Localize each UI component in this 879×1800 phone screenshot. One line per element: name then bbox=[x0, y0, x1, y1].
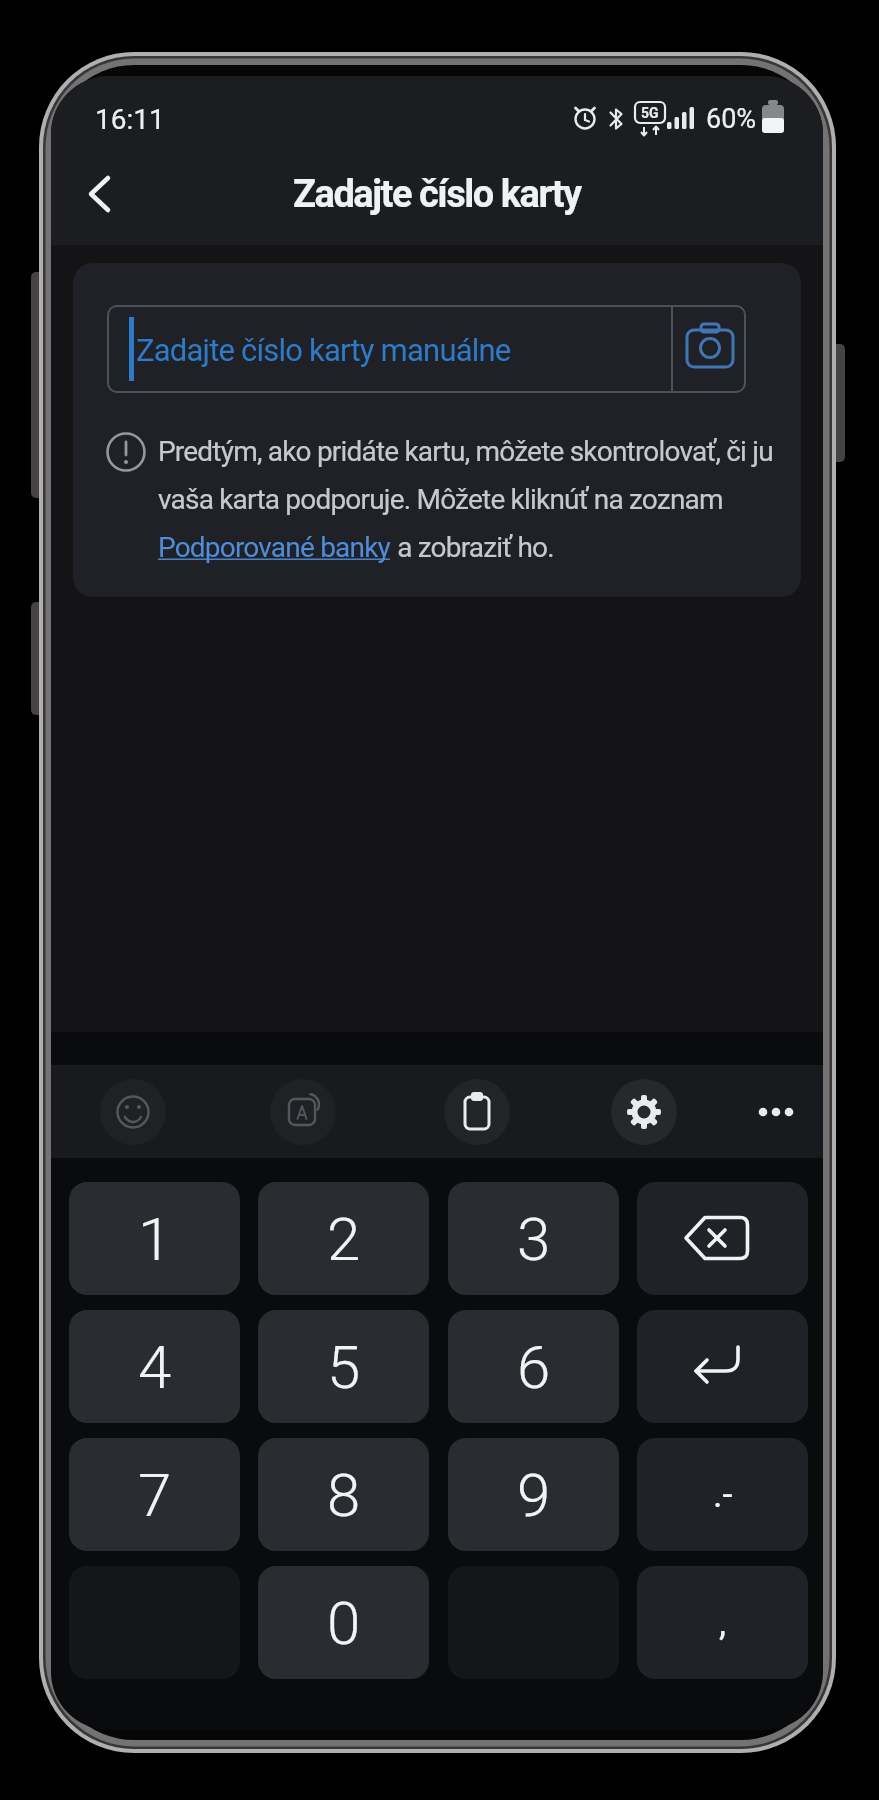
staticText: Zadajte číslo karty bbox=[293, 172, 581, 217]
button[interactable]: 7 bbox=[69, 1438, 240, 1551]
staticText: 16:11 bbox=[95, 103, 165, 136]
staticText: Predtým, ako pridáte kartu, môžete skont… bbox=[158, 435, 773, 468]
staticText: 1 bbox=[138, 1204, 172, 1274]
button[interactable] bbox=[743, 1086, 805, 1138]
button[interactable] bbox=[611, 1079, 677, 1145]
button[interactable] bbox=[100, 1079, 166, 1145]
staticText: a zobraziť ho. bbox=[391, 531, 554, 564]
staticText: 7 bbox=[138, 1460, 172, 1530]
button[interactable]: 3 bbox=[448, 1182, 619, 1295]
button[interactable] bbox=[673, 307, 746, 391]
staticText: .- bbox=[713, 1474, 733, 1516]
button[interactable]: 8 bbox=[258, 1438, 429, 1551]
button[interactable]: 4 bbox=[69, 1310, 240, 1423]
button[interactable]: 2 bbox=[258, 1182, 429, 1295]
staticText: 4 bbox=[138, 1332, 172, 1402]
staticText: 3 bbox=[517, 1204, 551, 1274]
button[interactable]: 9 bbox=[448, 1438, 619, 1551]
button[interactable] bbox=[637, 1182, 808, 1295]
button[interactable] bbox=[71, 170, 127, 218]
staticText: 5G bbox=[641, 105, 659, 121]
staticText: 2 bbox=[327, 1204, 361, 1274]
button[interactable]: .- bbox=[637, 1438, 808, 1551]
staticText: vaša karta podporuje. Môžete kliknúť na … bbox=[158, 483, 723, 516]
staticText: 60% bbox=[706, 103, 757, 135]
staticText: 0 bbox=[327, 1588, 361, 1658]
button[interactable]: 5 bbox=[258, 1310, 429, 1423]
button[interactable]: Podporované banky bbox=[158, 531, 391, 564]
button[interactable]: , bbox=[637, 1566, 808, 1679]
staticText: 6 bbox=[517, 1332, 551, 1402]
button[interactable] bbox=[107, 305, 746, 393]
button[interactable] bbox=[444, 1079, 510, 1145]
button[interactable]: 0 bbox=[258, 1566, 429, 1679]
staticText: 9 bbox=[517, 1460, 551, 1530]
button[interactable]: 1 bbox=[69, 1182, 240, 1295]
staticText: 5 bbox=[327, 1332, 361, 1402]
button[interactable] bbox=[637, 1310, 808, 1423]
staticText: Zadajte číslo karty manuálne bbox=[136, 332, 511, 368]
staticText: 8 bbox=[327, 1460, 361, 1530]
button[interactable] bbox=[270, 1079, 336, 1145]
staticText: , bbox=[719, 1602, 727, 1644]
button[interactable]: 6 bbox=[448, 1310, 619, 1423]
